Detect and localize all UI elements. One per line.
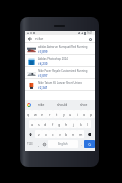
button[interactable]: t: [53, 110, 60, 118]
button[interactable]: y: [60, 110, 67, 118]
staticText: c: [52, 132, 54, 137]
staticText: ₹3,899: [38, 50, 48, 54]
staticText: Nike Tatum 65 Lanzar Short Unisex Runnin…: [38, 81, 93, 85]
button[interactable]: v: [56, 130, 63, 138]
button[interactable]: a: [29, 120, 35, 128]
button[interactable]: Nike Pacer Royale Customized Running Sho…: [25, 67, 95, 79]
staticText: v: [59, 132, 61, 137]
staticText: d: [44, 122, 47, 127]
button[interactable]: nike: [31, 100, 52, 109]
button[interactable]: k: [77, 120, 84, 128]
button[interactable]: ?123: [25, 140, 35, 148]
button[interactable]: should: [52, 100, 73, 109]
button[interactable]: z: [35, 130, 42, 138]
staticText: Adidas Photoshop 2024: [38, 57, 68, 61]
button[interactable]: d: [42, 120, 49, 128]
staticText: s: [38, 122, 40, 127]
button[interactable]: Clear search: [87, 36, 93, 42]
staticText: z: [38, 132, 40, 137]
button[interactable]: h: [63, 120, 70, 128]
staticText: n: [72, 132, 75, 137]
staticText: p: [90, 112, 93, 117]
staticText: t: [56, 112, 58, 117]
staticText: English: [58, 142, 68, 146]
staticText: ?123: [27, 142, 33, 146]
button[interactable]: shoe: [73, 100, 94, 109]
button[interactable]: Nike Tatum 65 Lanzar Short Unisex Runnin…: [25, 79, 95, 91]
button[interactable]: Adidas Photoshop 2024: [25, 55, 95, 67]
staticText: f: [52, 122, 54, 127]
staticText: b: [65, 132, 68, 137]
staticText: i: [77, 112, 78, 117]
button[interactable]: q: [25, 110, 32, 118]
button[interactable]: s: [35, 120, 42, 128]
staticText: a: [31, 122, 34, 127]
staticText: nike: [38, 103, 45, 107]
button[interactable]: Back: [25, 35, 95, 42]
staticText: m: [79, 132, 83, 137]
button[interactable]: n: [70, 130, 77, 138]
button[interactable]: f: [49, 120, 56, 128]
button[interactable]: Google: [27, 103, 31, 107]
button[interactable]: Period: [78, 139, 84, 149]
button[interactable]: b: [63, 130, 70, 138]
button[interactable]: Search: [84, 140, 95, 148]
button[interactable]: e: [39, 110, 46, 118]
button[interactable]: l: [84, 120, 91, 128]
staticText: r: [49, 112, 51, 117]
staticText: u: [69, 112, 72, 117]
button[interactable]: r: [46, 110, 53, 118]
staticText: w: [34, 112, 37, 117]
staticText: ₹3,097: [38, 74, 48, 78]
staticText: g: [58, 122, 61, 127]
button[interactable]: p: [88, 110, 95, 118]
staticText: e: [41, 112, 44, 117]
button[interactable]: j: [70, 120, 77, 128]
button[interactable]: w: [32, 110, 39, 118]
button[interactable]: adidas Astrarun Kumquat/Red Running Shoe…: [25, 43, 95, 55]
staticText: o: [83, 112, 86, 117]
button[interactable]: g: [56, 120, 63, 128]
staticText: ,: [38, 142, 39, 147]
staticText: l: [87, 122, 88, 127]
button[interactable]: Emoji: [41, 139, 48, 149]
staticText: adidas Astrarun Kumquat/Red Running Shoe…: [38, 45, 93, 49]
staticText: ₹2,341: [38, 86, 48, 90]
button[interactable]: Space: [48, 140, 78, 148]
staticText: j: [73, 122, 74, 127]
staticText: should: [57, 103, 68, 107]
button[interactable]: o: [81, 110, 88, 118]
staticText: ₹4,230: [38, 62, 48, 66]
button[interactable]: Back: [27, 36, 33, 42]
button[interactable]: m: [77, 130, 84, 138]
button[interactable]: i: [74, 110, 81, 118]
staticText: shoe: [80, 103, 88, 107]
staticText: .: [81, 142, 82, 147]
staticText: x: [45, 132, 47, 137]
staticText: h: [65, 122, 68, 127]
button[interactable]: Backspace: [84, 130, 95, 138]
staticText: y: [63, 112, 65, 117]
button[interactable]: x: [42, 130, 49, 138]
staticText: nike: [35, 36, 44, 42]
staticText: k: [80, 122, 82, 127]
staticText: Nike Pacer Royale Customized Running Sho…: [38, 69, 93, 73]
staticText: 9:41: [87, 31, 93, 35]
button[interactable]: Comma: [35, 139, 41, 149]
button[interactable]: c: [49, 130, 56, 138]
button[interactable]: Shift: [25, 130, 35, 138]
staticText: q: [27, 112, 30, 117]
button[interactable]: u: [67, 110, 74, 118]
